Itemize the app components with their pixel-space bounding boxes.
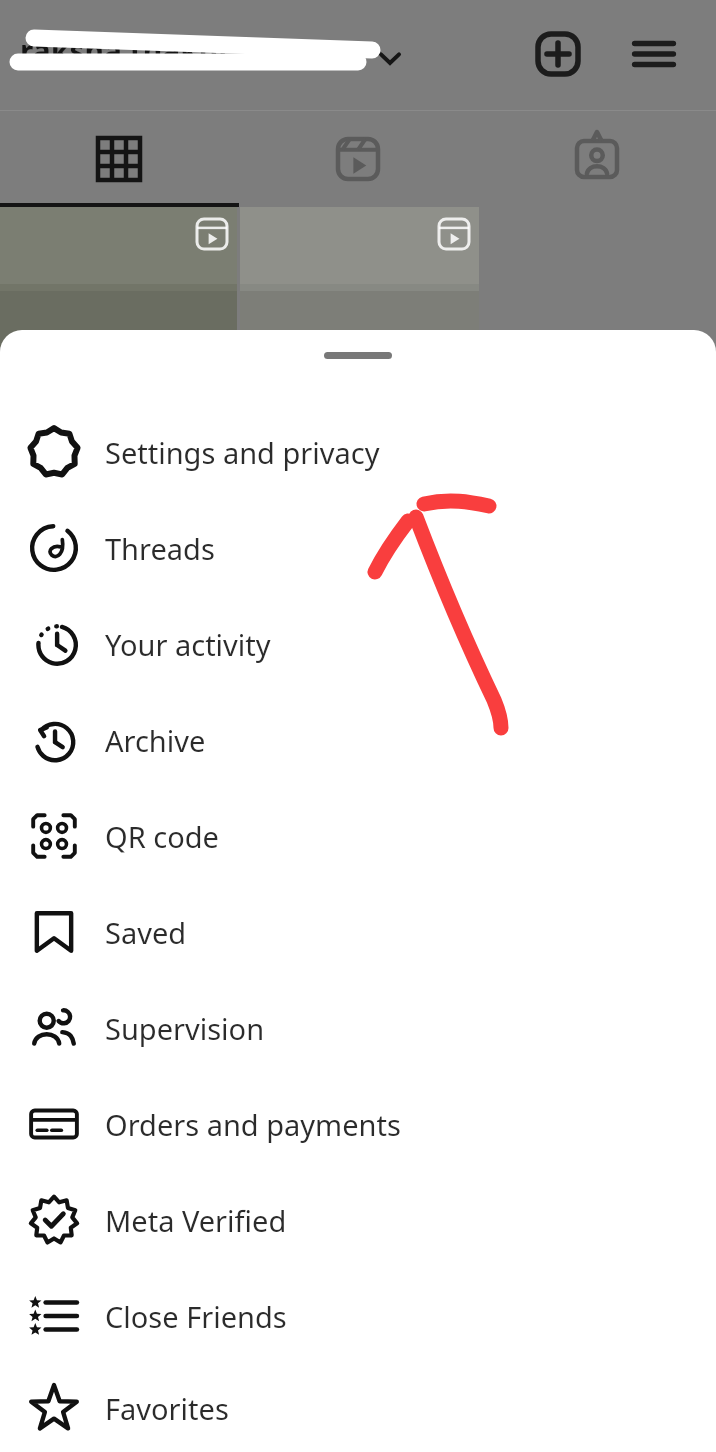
staticText: Threads bbox=[105, 529, 215, 568]
staticText: Meta Verified bbox=[105, 1201, 287, 1240]
staticText: Favorites bbox=[105, 1389, 229, 1428]
staticText: Orders and payments bbox=[105, 1105, 401, 1144]
staticText: Your activity bbox=[105, 625, 271, 664]
button[interactable]: Create bbox=[532, 28, 584, 80]
button[interactable]: Switch account bbox=[372, 40, 408, 76]
button[interactable]: Threads bbox=[0, 500, 716, 596]
button[interactable]: Settings and privacy bbox=[0, 404, 716, 500]
button[interactable]: Saved bbox=[0, 884, 716, 980]
button[interactable]: Supervision bbox=[0, 980, 716, 1076]
button[interactable] bbox=[240, 207, 479, 347]
button[interactable] bbox=[0, 207, 237, 347]
staticText: Supervision bbox=[105, 1009, 265, 1048]
button[interactable]: QR code bbox=[0, 788, 716, 884]
button[interactable]: Meta Verified bbox=[0, 1172, 716, 1268]
button[interactable]: Orders and payments bbox=[0, 1076, 716, 1172]
staticText: QR code bbox=[105, 817, 219, 856]
staticText: Archive bbox=[105, 721, 206, 760]
staticText: Saved bbox=[105, 913, 187, 952]
staticText: raksha thakur bbox=[20, 30, 232, 71]
staticText: Close Friends bbox=[105, 1297, 287, 1336]
button[interactable]: Posts bbox=[0, 111, 238, 207]
button[interactable]: Close Friends bbox=[0, 1268, 716, 1364]
button[interactable]: raksha thakur bbox=[20, 30, 232, 71]
button[interactable]: Your activity bbox=[0, 596, 716, 692]
button[interactable]: Tagged bbox=[477, 111, 716, 207]
button[interactable]: Reels bbox=[238, 111, 477, 207]
button[interactable]: Archive bbox=[0, 692, 716, 788]
button[interactable]: Favorites bbox=[0, 1364, 716, 1452]
staticText: Settings and privacy bbox=[105, 433, 380, 472]
button[interactable]: Menu bbox=[628, 28, 680, 80]
